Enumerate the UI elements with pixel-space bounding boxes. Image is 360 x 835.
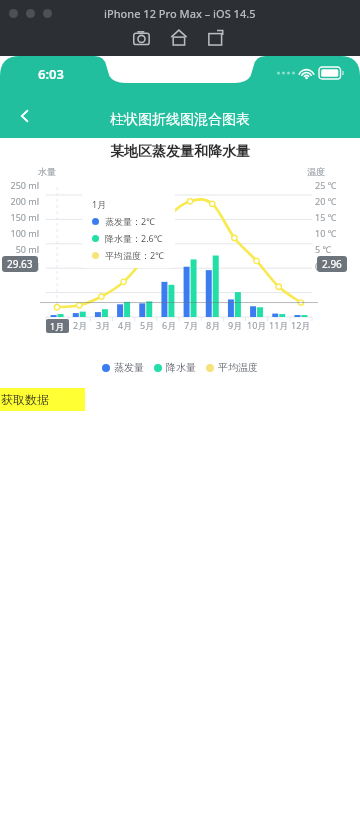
staticText: 29.63 (7, 257, 33, 271)
staticText: 2月 (73, 319, 88, 331)
staticText: 0 ℃ (315, 260, 360, 272)
staticText: 200 ml (0, 195, 39, 207)
staticText: 8月 (206, 319, 221, 331)
staticText: 平均温度 (218, 361, 258, 374)
staticText: 7月 (184, 319, 199, 331)
staticText: 6:03 (38, 65, 64, 83)
staticText: 0 ml (0, 260, 39, 272)
button[interactable]: 降水量 (154, 361, 196, 374)
staticText: 12月 (291, 319, 311, 331)
staticText: 1月 (50, 320, 65, 332)
staticText: 水量 (38, 166, 56, 177)
button[interactable]: Rotate (206, 27, 228, 49)
staticText: 25 ℃ (315, 179, 360, 191)
staticText: 15 ℃ (315, 211, 360, 223)
staticText: iPhone 12 Pro Max – iOS 14.5 (104, 6, 256, 21)
staticText: 11月 (269, 319, 289, 331)
staticText: 9月 (228, 319, 243, 331)
staticText: 柱状图折线图混合图表 (110, 111, 250, 129)
staticText: 250 ml (0, 179, 39, 191)
staticText: 降水量：2.6℃ (105, 232, 163, 244)
staticText: 100 ml (0, 227, 39, 239)
button[interactable]: Back (6, 97, 44, 135)
button[interactable]: 蒸发量 (102, 361, 144, 374)
staticText: 蒸发量 (114, 361, 144, 374)
staticText: 蒸发量：2℃ (105, 215, 156, 227)
staticText: 50 ml (0, 243, 39, 255)
staticText: 20 ℃ (315, 195, 360, 207)
staticText: 某地区蒸发量和降水量 (0, 143, 360, 161)
button[interactable]: 1月 (50, 320, 65, 332)
staticText: 2.96 (322, 257, 342, 271)
button[interactable]: Home (169, 27, 191, 49)
staticText: 1月 (92, 198, 107, 210)
button[interactable]: 获取数据 (0, 388, 85, 411)
staticText: 6月 (162, 319, 177, 331)
staticText: 10月 (247, 319, 267, 331)
button[interactable]: 平均温度 (206, 361, 258, 374)
staticText: 5 ℃ (315, 243, 360, 255)
staticText: 3月 (96, 319, 111, 331)
staticText: 降水量 (166, 361, 196, 374)
staticText: 150 ml (0, 211, 39, 223)
staticText: 获取数据 (1, 392, 49, 407)
button[interactable]: Screenshot (132, 27, 154, 49)
staticText: 温度 (307, 166, 325, 177)
staticText: 平均温度：2℃ (105, 249, 165, 261)
staticText: 4月 (118, 319, 133, 331)
staticText: 10 ℃ (315, 227, 360, 239)
staticText: 5月 (140, 319, 155, 331)
